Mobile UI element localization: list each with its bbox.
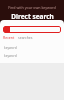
staticText: Recent [3, 35, 15, 40]
staticText: searches [18, 35, 33, 40]
staticText: Find with your own keyword [8, 5, 56, 10]
staticText: keyword [4, 46, 17, 50]
button[interactable] [3, 26, 61, 33]
staticText: keyword [4, 54, 17, 58]
staticText: Direct search [11, 12, 54, 21]
